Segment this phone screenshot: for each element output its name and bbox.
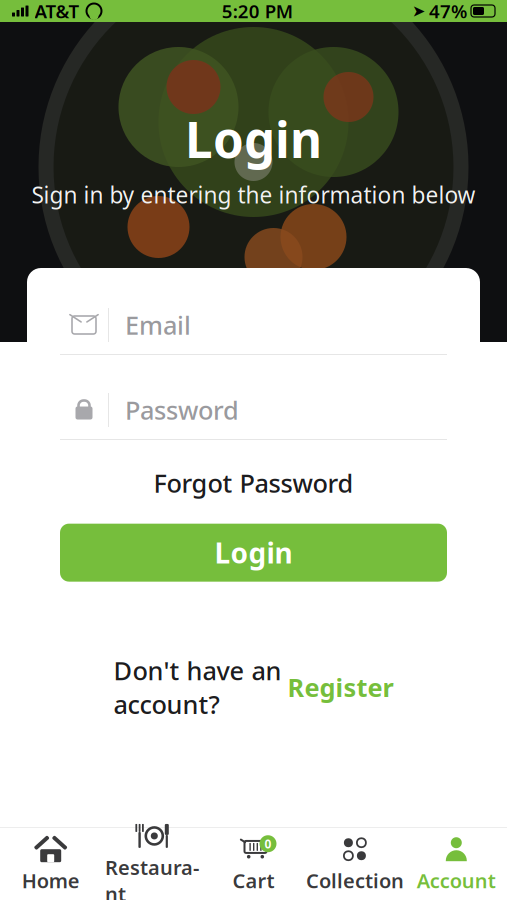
staticText: 5:20 PM — [222, 0, 293, 23]
staticText: Email — [125, 308, 191, 342]
staticText: 47% — [429, 0, 467, 23]
staticText: Account — [417, 867, 496, 894]
button[interactable]: Login — [60, 524, 447, 582]
staticText: Restaurant — [105, 854, 199, 900]
button[interactable]: Home — [0, 828, 101, 900]
staticText: Don't have an account? — [113, 654, 281, 721]
staticText: ➤ — [412, 2, 425, 20]
staticText: AT&T — [34, 0, 79, 23]
staticText: Login — [185, 106, 322, 172]
staticText: Forgot Password — [153, 466, 353, 500]
staticText: Register — [287, 670, 393, 704]
button[interactable]: Collection — [304, 828, 406, 900]
staticText: Sign in by entering the information belo… — [31, 180, 475, 210]
button[interactable]: 0 — [203, 828, 304, 900]
button[interactable]: Forgot Password — [60, 456, 447, 510]
staticText: Cart — [232, 867, 274, 894]
button[interactable]: Don't have an account? — [60, 644, 447, 731]
staticText: Home — [22, 867, 80, 894]
staticText: Password — [125, 393, 239, 427]
button[interactable]: Account — [406, 828, 507, 900]
button[interactable]: Restaurant — [101, 815, 203, 900]
staticText: 0 — [264, 836, 271, 852]
staticText: Login — [214, 534, 292, 571]
staticText: Collection — [306, 867, 404, 894]
